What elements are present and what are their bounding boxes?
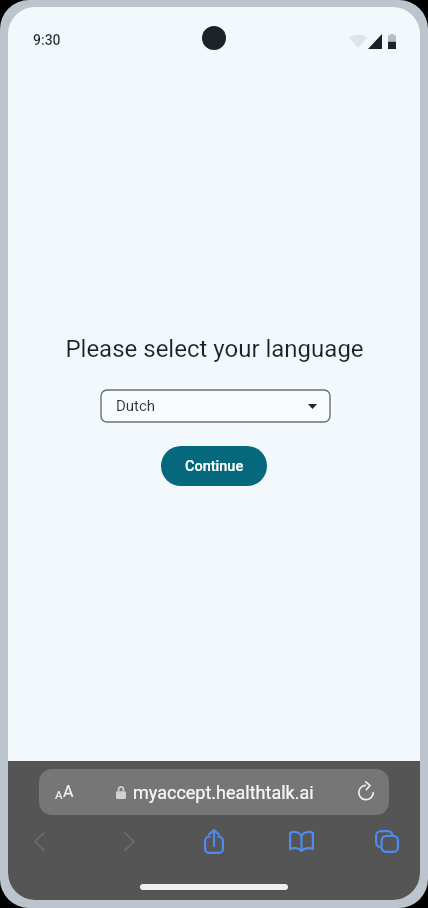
staticText: myaccept.healthtalk.ai: [133, 782, 314, 803]
button[interactable]: Share: [186, 819, 242, 863]
staticText: 9:30: [33, 32, 61, 48]
button[interactable]: Bookmarks: [273, 819, 329, 863]
button[interactable]: Continue: [161, 446, 267, 486]
staticText: Continue: [185, 458, 244, 475]
button[interactable]: Dutch: [101, 390, 330, 422]
staticText: Dutch: [116, 397, 156, 415]
staticText: Please select your language: [65, 335, 364, 363]
staticText: A: [55, 788, 63, 801]
button[interactable]: A: [39, 769, 389, 815]
button[interactable]: Reload: [358, 781, 382, 805]
staticText: A: [63, 782, 74, 801]
button[interactable]: Tabs: [359, 819, 415, 863]
